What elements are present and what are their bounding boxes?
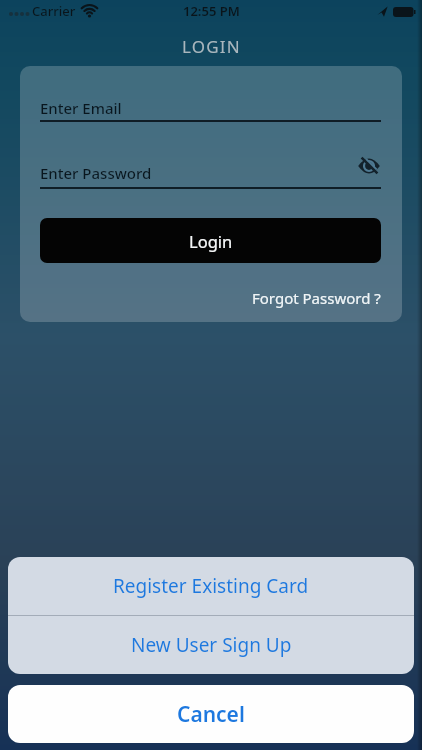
button[interactable]: New User Sign Up: [8, 616, 414, 674]
staticText: 12:55 PM: [183, 2, 240, 20]
button[interactable]: Cancel: [8, 685, 414, 743]
staticText: Carrier: [32, 2, 76, 20]
button[interactable]: Login: [40, 218, 381, 263]
staticText: Cancel: [177, 700, 245, 729]
staticText: New User Sign Up: [131, 632, 292, 658]
staticText: LOGIN: [182, 35, 241, 58]
staticText: Register Existing Card: [113, 573, 309, 599]
button[interactable]: Enter Password: [40, 161, 381, 185]
staticText: Enter Password: [40, 163, 152, 183]
button[interactable]: Forgot Password ?: [252, 288, 381, 308]
staticText: Login: [189, 230, 233, 252]
staticText: Forgot Password ?: [252, 288, 381, 308]
button[interactable]: Enter Email: [40, 98, 381, 118]
button[interactable]: Register Existing Card: [8, 557, 414, 615]
staticText: Enter Email: [40, 98, 122, 118]
